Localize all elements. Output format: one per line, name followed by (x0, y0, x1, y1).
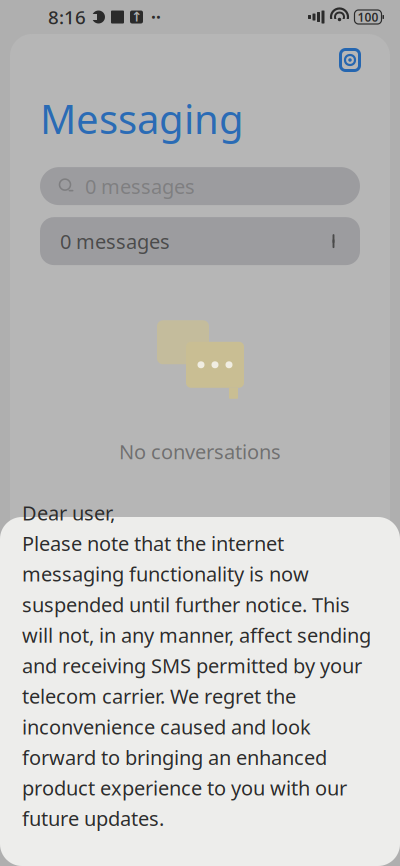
staticText: 0 messages (85, 173, 195, 199)
button[interactable]: 0 messages (40, 217, 360, 265)
staticText: 8:16 (48, 5, 86, 29)
button[interactable]: Settings (330, 40, 370, 80)
staticText: ↑ (131, 9, 142, 24)
staticText: ·· (151, 5, 161, 28)
staticText: No conversations (119, 438, 281, 465)
staticText: Messaging (40, 92, 244, 145)
staticText: 0 messages (60, 228, 170, 254)
staticText: 100 (357, 9, 378, 25)
staticText: Dear user, Please note that the internet… (22, 499, 371, 832)
